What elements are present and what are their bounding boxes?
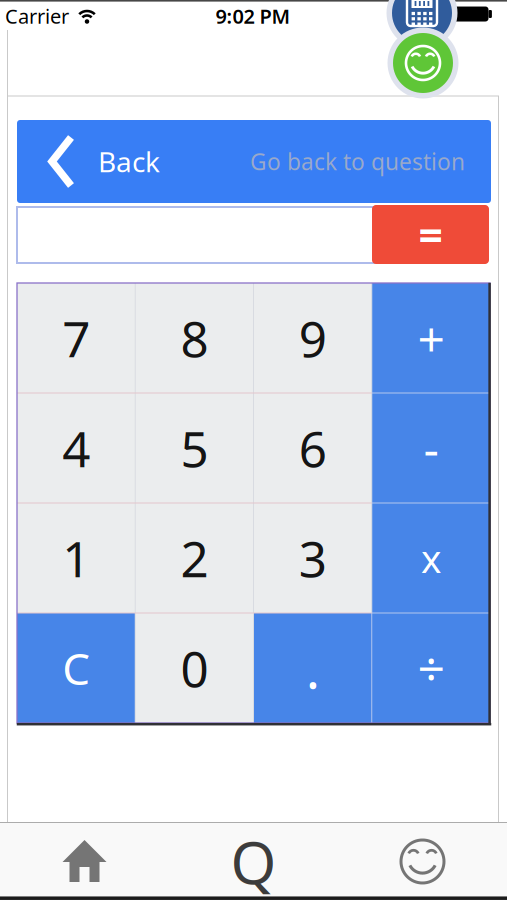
button[interactable]: Mood	[338, 822, 507, 900]
button[interactable]: +	[372, 283, 490, 393]
button[interactable]: Home	[0, 822, 169, 900]
button[interactable]: 3	[253, 503, 372, 613]
staticText: =	[418, 206, 442, 263]
staticText: 0	[180, 635, 208, 701]
button[interactable]: 5	[135, 393, 253, 503]
staticText: 4	[62, 415, 90, 481]
staticText: +	[417, 306, 444, 370]
staticText: C	[62, 639, 90, 697]
button[interactable]: 6	[253, 393, 372, 503]
staticText: 1	[62, 525, 90, 591]
staticText: 7	[62, 305, 90, 371]
button[interactable]: x	[372, 503, 490, 613]
staticText: 9	[299, 305, 327, 371]
button[interactable]: Equals	[372, 205, 489, 264]
staticText: ÷	[417, 636, 444, 700]
staticText: 2	[180, 525, 208, 591]
staticText: 8	[180, 305, 208, 371]
staticText: 3	[299, 525, 327, 591]
staticText: Go back to question	[250, 146, 465, 176]
button[interactable]: 9	[253, 283, 372, 393]
staticText: -	[423, 416, 438, 480]
button[interactable]: Answer	[17, 207, 374, 263]
button[interactable]: 0	[135, 613, 253, 723]
button[interactable]: 8	[135, 283, 253, 393]
button[interactable]: C	[17, 613, 135, 723]
staticText: Back	[98, 143, 160, 180]
staticText: x	[421, 532, 441, 584]
staticText: Carrier	[5, 3, 69, 29]
staticText: 5	[180, 415, 208, 481]
button[interactable]: Mood	[387, 27, 458, 98]
staticText: .	[306, 633, 320, 703]
button[interactable]: ÷	[372, 613, 490, 723]
button[interactable]: 4	[17, 393, 135, 503]
button[interactable]: Back	[17, 120, 491, 203]
staticText: 6	[299, 415, 327, 481]
button[interactable]: 2	[135, 503, 253, 613]
button[interactable]: 1	[17, 503, 135, 613]
button[interactable]: Questions	[169, 822, 338, 900]
button[interactable]: -	[372, 393, 490, 503]
button[interactable]: Calculator	[386, 0, 457, 48]
staticText: Q	[230, 822, 276, 900]
button[interactable]: 7	[17, 283, 135, 393]
button[interactable]: .	[253, 613, 372, 723]
staticText: 9:02 PM	[215, 3, 290, 29]
